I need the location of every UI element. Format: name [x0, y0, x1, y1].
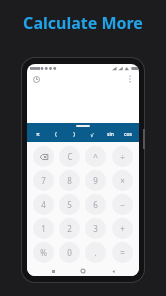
staticText: C: [67, 151, 73, 162]
staticText: +: [120, 223, 125, 234]
staticText: 2: [67, 223, 72, 234]
staticText: 3: [93, 223, 98, 234]
button[interactable]: C: [59, 146, 80, 167]
button[interactable]: (: [47, 129, 65, 140]
staticText: Calculate More: [23, 12, 143, 34]
button[interactable]: 3: [85, 218, 106, 239]
staticText: √: [90, 132, 94, 138]
staticText: π: [36, 131, 40, 138]
staticText: 9: [93, 175, 98, 186]
staticText: 5: [67, 199, 72, 210]
button[interactable]: +: [112, 218, 133, 239]
staticText: 4: [41, 199, 46, 210]
staticText: ×: [120, 175, 125, 186]
button[interactable]: π: [29, 129, 47, 140]
button[interactable]: −: [112, 194, 133, 215]
button[interactable]: 4: [33, 194, 54, 215]
button[interactable]: 0: [59, 242, 80, 263]
button[interactable]: 2: [59, 218, 80, 239]
button[interactable]: 1: [33, 218, 54, 239]
staticText: 8: [67, 175, 72, 186]
staticText: ÷: [120, 151, 125, 162]
staticText: 1: [41, 223, 46, 234]
button[interactable]: Back: [98, 266, 128, 276]
staticText: =: [120, 247, 125, 258]
button[interactable]: ÷: [112, 146, 133, 167]
staticText: %: [40, 247, 47, 258]
button[interactable]: ): [65, 129, 83, 140]
button[interactable]: %: [33, 242, 54, 263]
staticText: .: [94, 247, 97, 258]
button[interactable]: More options: [125, 74, 135, 84]
staticText: 0: [67, 247, 72, 258]
button[interactable]: Recents: [38, 266, 68, 276]
staticText: ^: [93, 151, 98, 162]
button[interactable]: Home: [68, 266, 98, 276]
button[interactable]: History: [31, 74, 41, 84]
staticText: cos: [124, 131, 132, 138]
staticText: −: [120, 199, 125, 210]
button[interactable]: .: [85, 242, 106, 263]
button[interactable]: =: [112, 242, 133, 263]
button[interactable]: √: [83, 129, 101, 140]
button[interactable]: Backspace: [33, 146, 54, 167]
button[interactable]: 7: [33, 170, 54, 191]
button[interactable]: 5: [59, 194, 80, 215]
button[interactable]: 6: [85, 194, 106, 215]
staticText: 6: [93, 199, 98, 210]
staticText: sin: [107, 131, 114, 138]
button[interactable]: cos: [119, 129, 137, 140]
staticText: 7: [41, 175, 46, 186]
button[interactable]: sin: [101, 129, 119, 140]
button[interactable]: ×: [112, 170, 133, 191]
staticText: ): [73, 131, 75, 138]
button[interactable]: 8: [59, 170, 80, 191]
button[interactable]: 9: [85, 170, 106, 191]
staticText: (: [55, 131, 57, 138]
button[interactable]: ^: [85, 146, 106, 167]
